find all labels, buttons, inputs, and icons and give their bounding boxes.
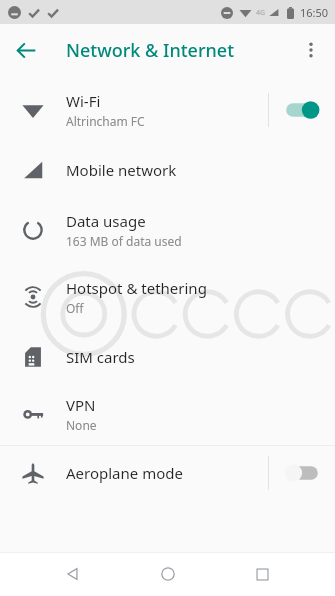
button[interactable]: Home [146, 552, 190, 596]
staticText: 16:50 [300, 5, 329, 20]
staticText: Network & Internet [66, 38, 235, 63]
button[interactable]: Back [6, 30, 46, 70]
button[interactable]: VPN [0, 383, 335, 445]
button[interactable]: Recent apps [240, 552, 284, 596]
staticText: Hotspot & tethering [66, 278, 207, 298]
staticText: Mobile network [66, 160, 177, 180]
staticText: SIM cards [66, 347, 135, 367]
staticText: Aeroplane mode [66, 463, 183, 483]
staticText: Data usage [66, 211, 146, 231]
button[interactable]: Data usage [0, 196, 335, 263]
staticText: Wi-Fi [66, 91, 101, 111]
staticText: Off [66, 300, 84, 316]
button[interactable]: Aeroplane mode [0, 446, 335, 499]
staticText: None [66, 417, 97, 433]
button[interactable]: SIM cards [0, 330, 335, 383]
button[interactable]: Hotspot & tethering [0, 263, 335, 330]
button[interactable]: Mobile network [0, 143, 335, 196]
button[interactable]: More options [291, 30, 331, 70]
button[interactable]: Wi-Fi [0, 76, 335, 143]
staticText: 4G [256, 8, 266, 18]
button[interactable]: Aeroplane mode toggle [269, 446, 335, 499]
staticText: 163 MB of data used [66, 233, 182, 249]
button[interactable]: Back [51, 552, 95, 596]
staticText: Altrincham FC [66, 113, 145, 129]
button[interactable]: Wi-Fi toggle [269, 76, 335, 143]
staticText: VPN [66, 395, 96, 415]
